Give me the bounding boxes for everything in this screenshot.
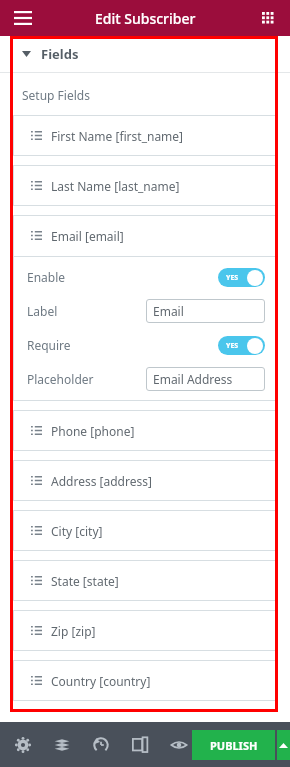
staticText: YES [226, 273, 239, 283]
button[interactable]: City [city] [13, 510, 277, 551]
staticText: Edit Subscriber [95, 9, 196, 28]
button[interactable]: PUBLISH [192, 730, 275, 760]
staticText: Phone [phone] [51, 423, 135, 439]
button[interactable]: Email [146, 299, 265, 323]
staticText: YES [226, 341, 239, 351]
staticText: City [city] [51, 523, 103, 539]
button[interactable]: Preview [166, 732, 192, 758]
button[interactable]: Email Address [146, 367, 265, 391]
button[interactable]: Last Name [last_name] [13, 165, 277, 206]
button[interactable]: Toggle on [218, 336, 265, 355]
staticText: Enable [27, 269, 66, 285]
button[interactable]: Layers [49, 732, 75, 758]
staticText: Last Name [last_name] [51, 178, 180, 194]
button[interactable]: Publish options [277, 730, 290, 760]
button[interactable]: Address [address] [13, 460, 277, 501]
staticText: PUBLISH [210, 738, 258, 753]
staticText: Require [27, 337, 71, 353]
button[interactable]: Responsive mode [127, 732, 153, 758]
staticText: Placeholder [27, 371, 94, 387]
button[interactable]: First Name [first_name] [13, 115, 277, 156]
staticText: Email [153, 303, 184, 319]
staticText: Fields [41, 45, 79, 63]
button[interactable]: State [state] [13, 560, 277, 601]
staticText: State [state] [51, 573, 119, 589]
button[interactable]: Country [country] [13, 660, 277, 701]
button[interactable]: Zip [zip] [13, 610, 277, 651]
staticText: Email [email] [51, 228, 124, 244]
button[interactable]: History [88, 732, 114, 758]
button[interactable]: Fields [0, 36, 290, 72]
button[interactable]: Email [email] [13, 215, 277, 256]
staticText: First Name [first_name] [51, 128, 184, 144]
staticText: Label [27, 303, 58, 319]
staticText: Email Address [153, 371, 233, 387]
button[interactable]: Phone [phone] [13, 410, 277, 451]
staticText: Zip [zip] [51, 623, 96, 639]
button[interactable]: Apps [254, 4, 282, 32]
staticText: Country [country] [51, 673, 151, 689]
staticText: Setup Fields [22, 87, 90, 103]
button[interactable]: Menu [8, 3, 38, 33]
button[interactable]: Toggle on [218, 268, 265, 287]
staticText: Address [address] [51, 473, 152, 489]
button[interactable]: Settings [10, 732, 36, 758]
